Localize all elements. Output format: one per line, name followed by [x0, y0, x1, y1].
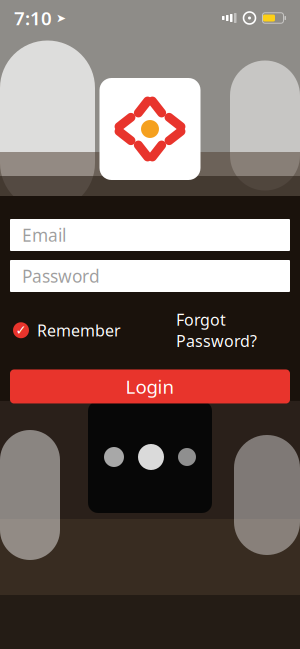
staticText: ➤ [52, 11, 66, 25]
staticText: Email [22, 223, 66, 246]
staticText: ✓ [15, 323, 26, 338]
staticText: Forgot Password? [176, 309, 257, 351]
button[interactable]: Login [10, 369, 290, 403]
staticText: Login [125, 374, 174, 399]
staticText: Remember [37, 320, 121, 341]
staticText: 7:10 [14, 6, 52, 30]
staticText: Password [22, 264, 100, 287]
button[interactable]: Forgot Password? [176, 309, 287, 351]
button[interactable]: ✓ [13, 320, 121, 341]
